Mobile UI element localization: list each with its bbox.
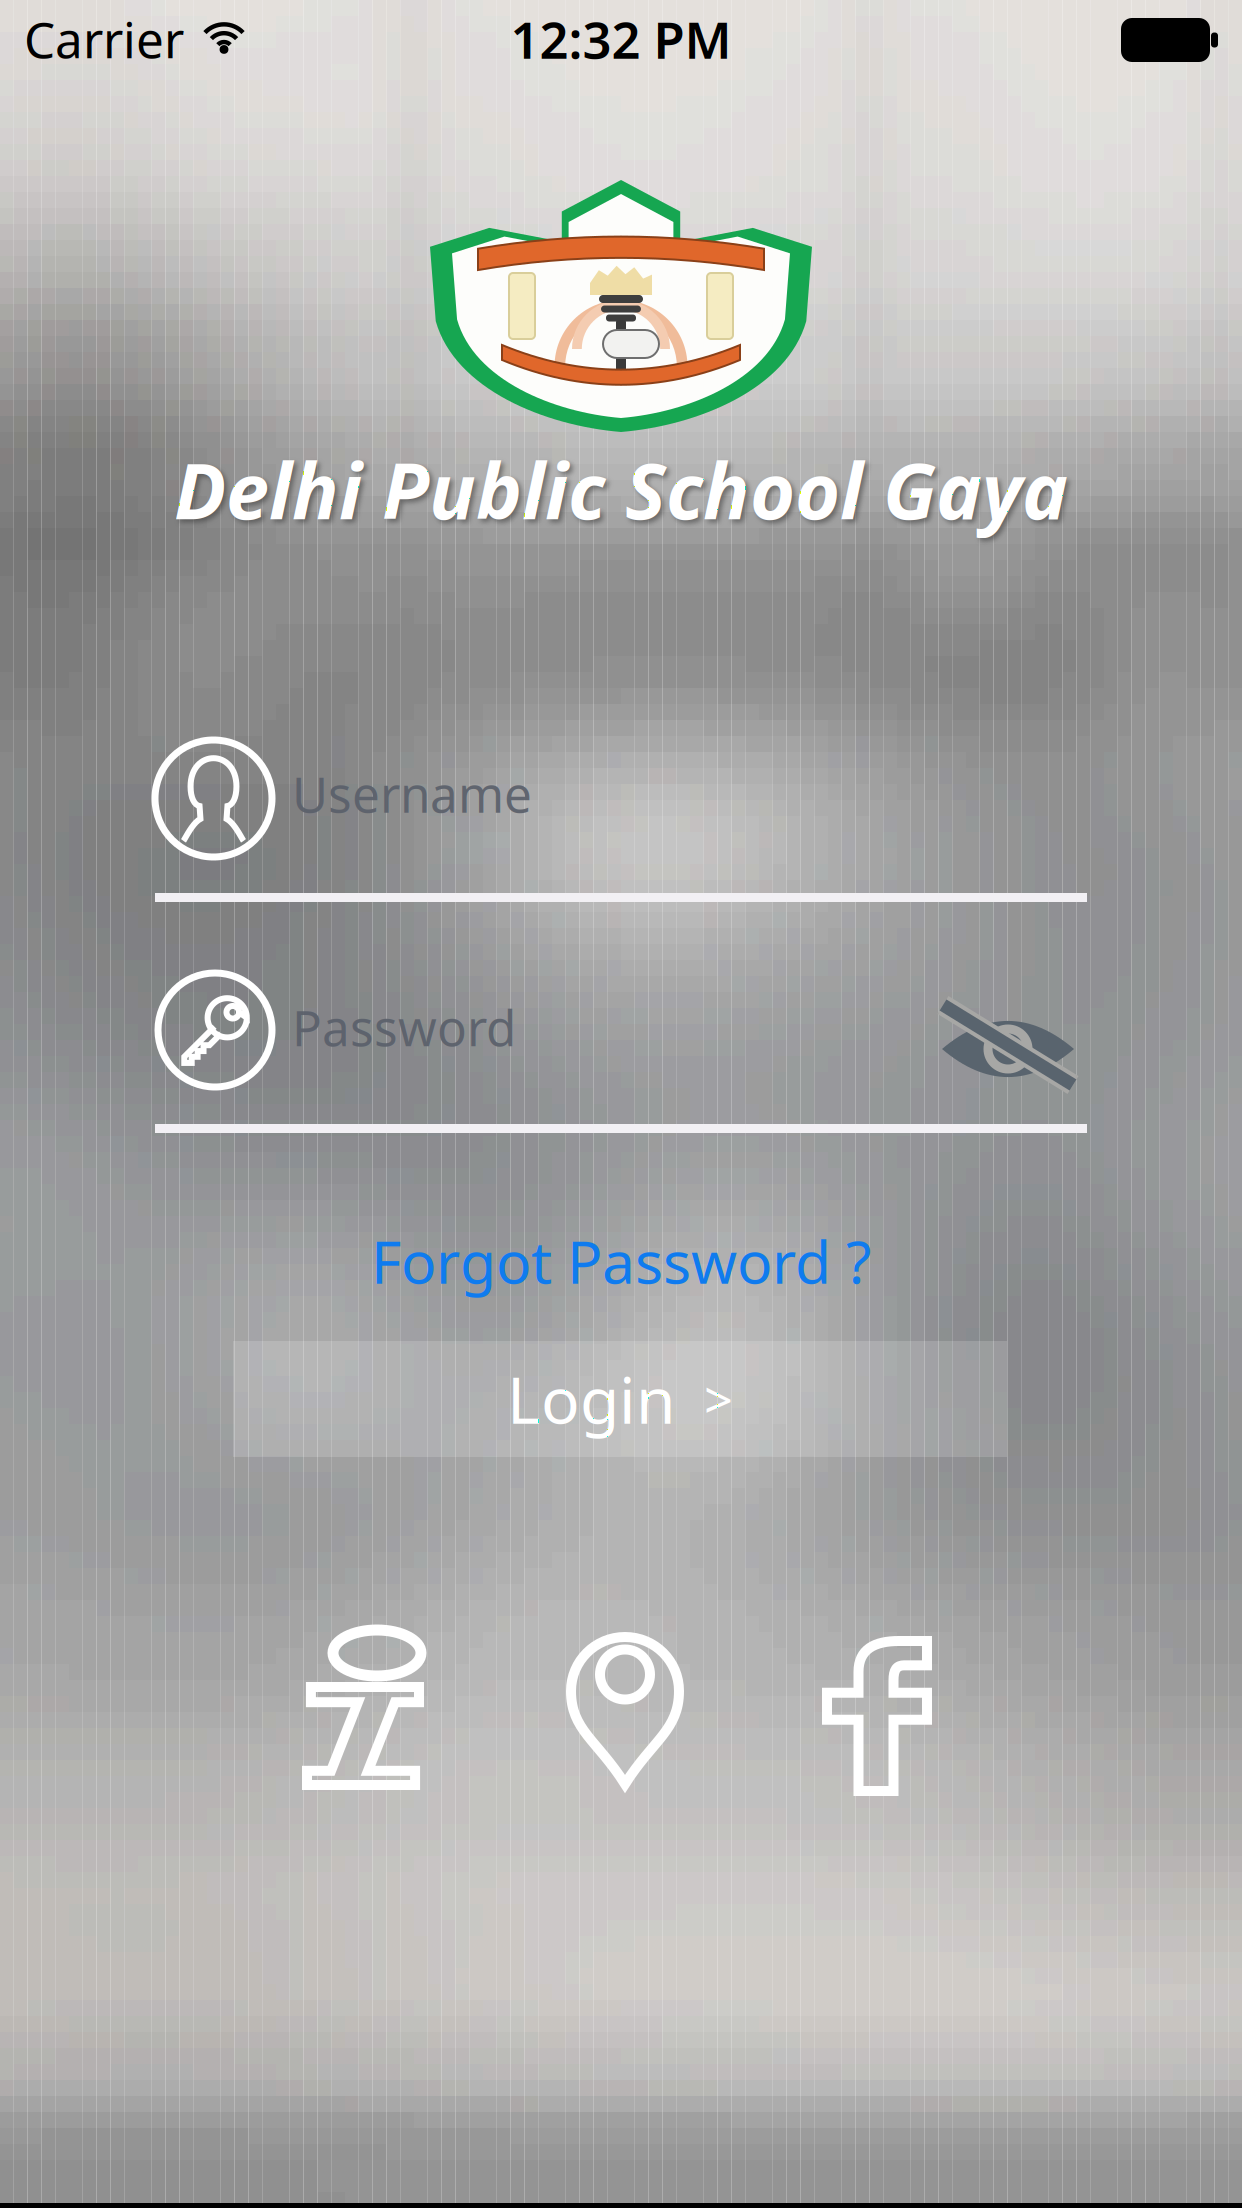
staticText: Delhi Public School Gaya (174, 438, 1068, 541)
staticText: > (704, 1365, 733, 1433)
button[interactable]: Information (307, 1630, 437, 1800)
staticText: Carrier (24, 6, 184, 72)
staticText: Username (292, 761, 532, 826)
staticText: Forgot Password ? (371, 1222, 871, 1300)
staticText: Password (292, 994, 516, 1060)
button[interactable]: Location (563, 1629, 687, 1792)
button[interactable]: Forgot Password ? (357, 1212, 885, 1310)
button[interactable]: Facebook (819, 1633, 935, 1799)
button[interactable]: Login (233, 1341, 1007, 1457)
staticText: 12:32 PM (510, 5, 731, 73)
button[interactable]: Show password (933, 990, 1083, 1100)
staticText: Login (507, 1356, 676, 1441)
